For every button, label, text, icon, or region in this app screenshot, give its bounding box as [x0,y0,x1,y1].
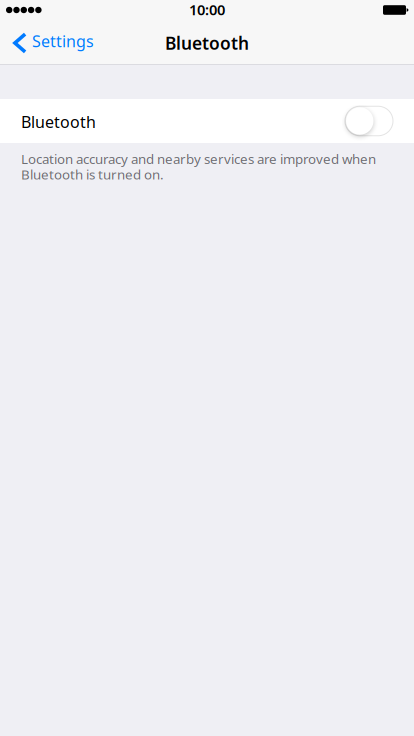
staticText: Bluetooth [21,111,96,132]
staticText: Settings [32,30,94,52]
button[interactable]: Bluetooth [0,99,414,143]
staticText: 10:00 [189,0,225,19]
staticText: Bluetooth is turned on. [21,165,164,183]
staticText: Location accuracy and nearby services ar… [21,150,376,168]
staticText: Bluetooth [165,31,249,54]
button[interactable]: Settings [0,22,104,64]
button[interactable]: Bluetooth, off [345,106,393,136]
